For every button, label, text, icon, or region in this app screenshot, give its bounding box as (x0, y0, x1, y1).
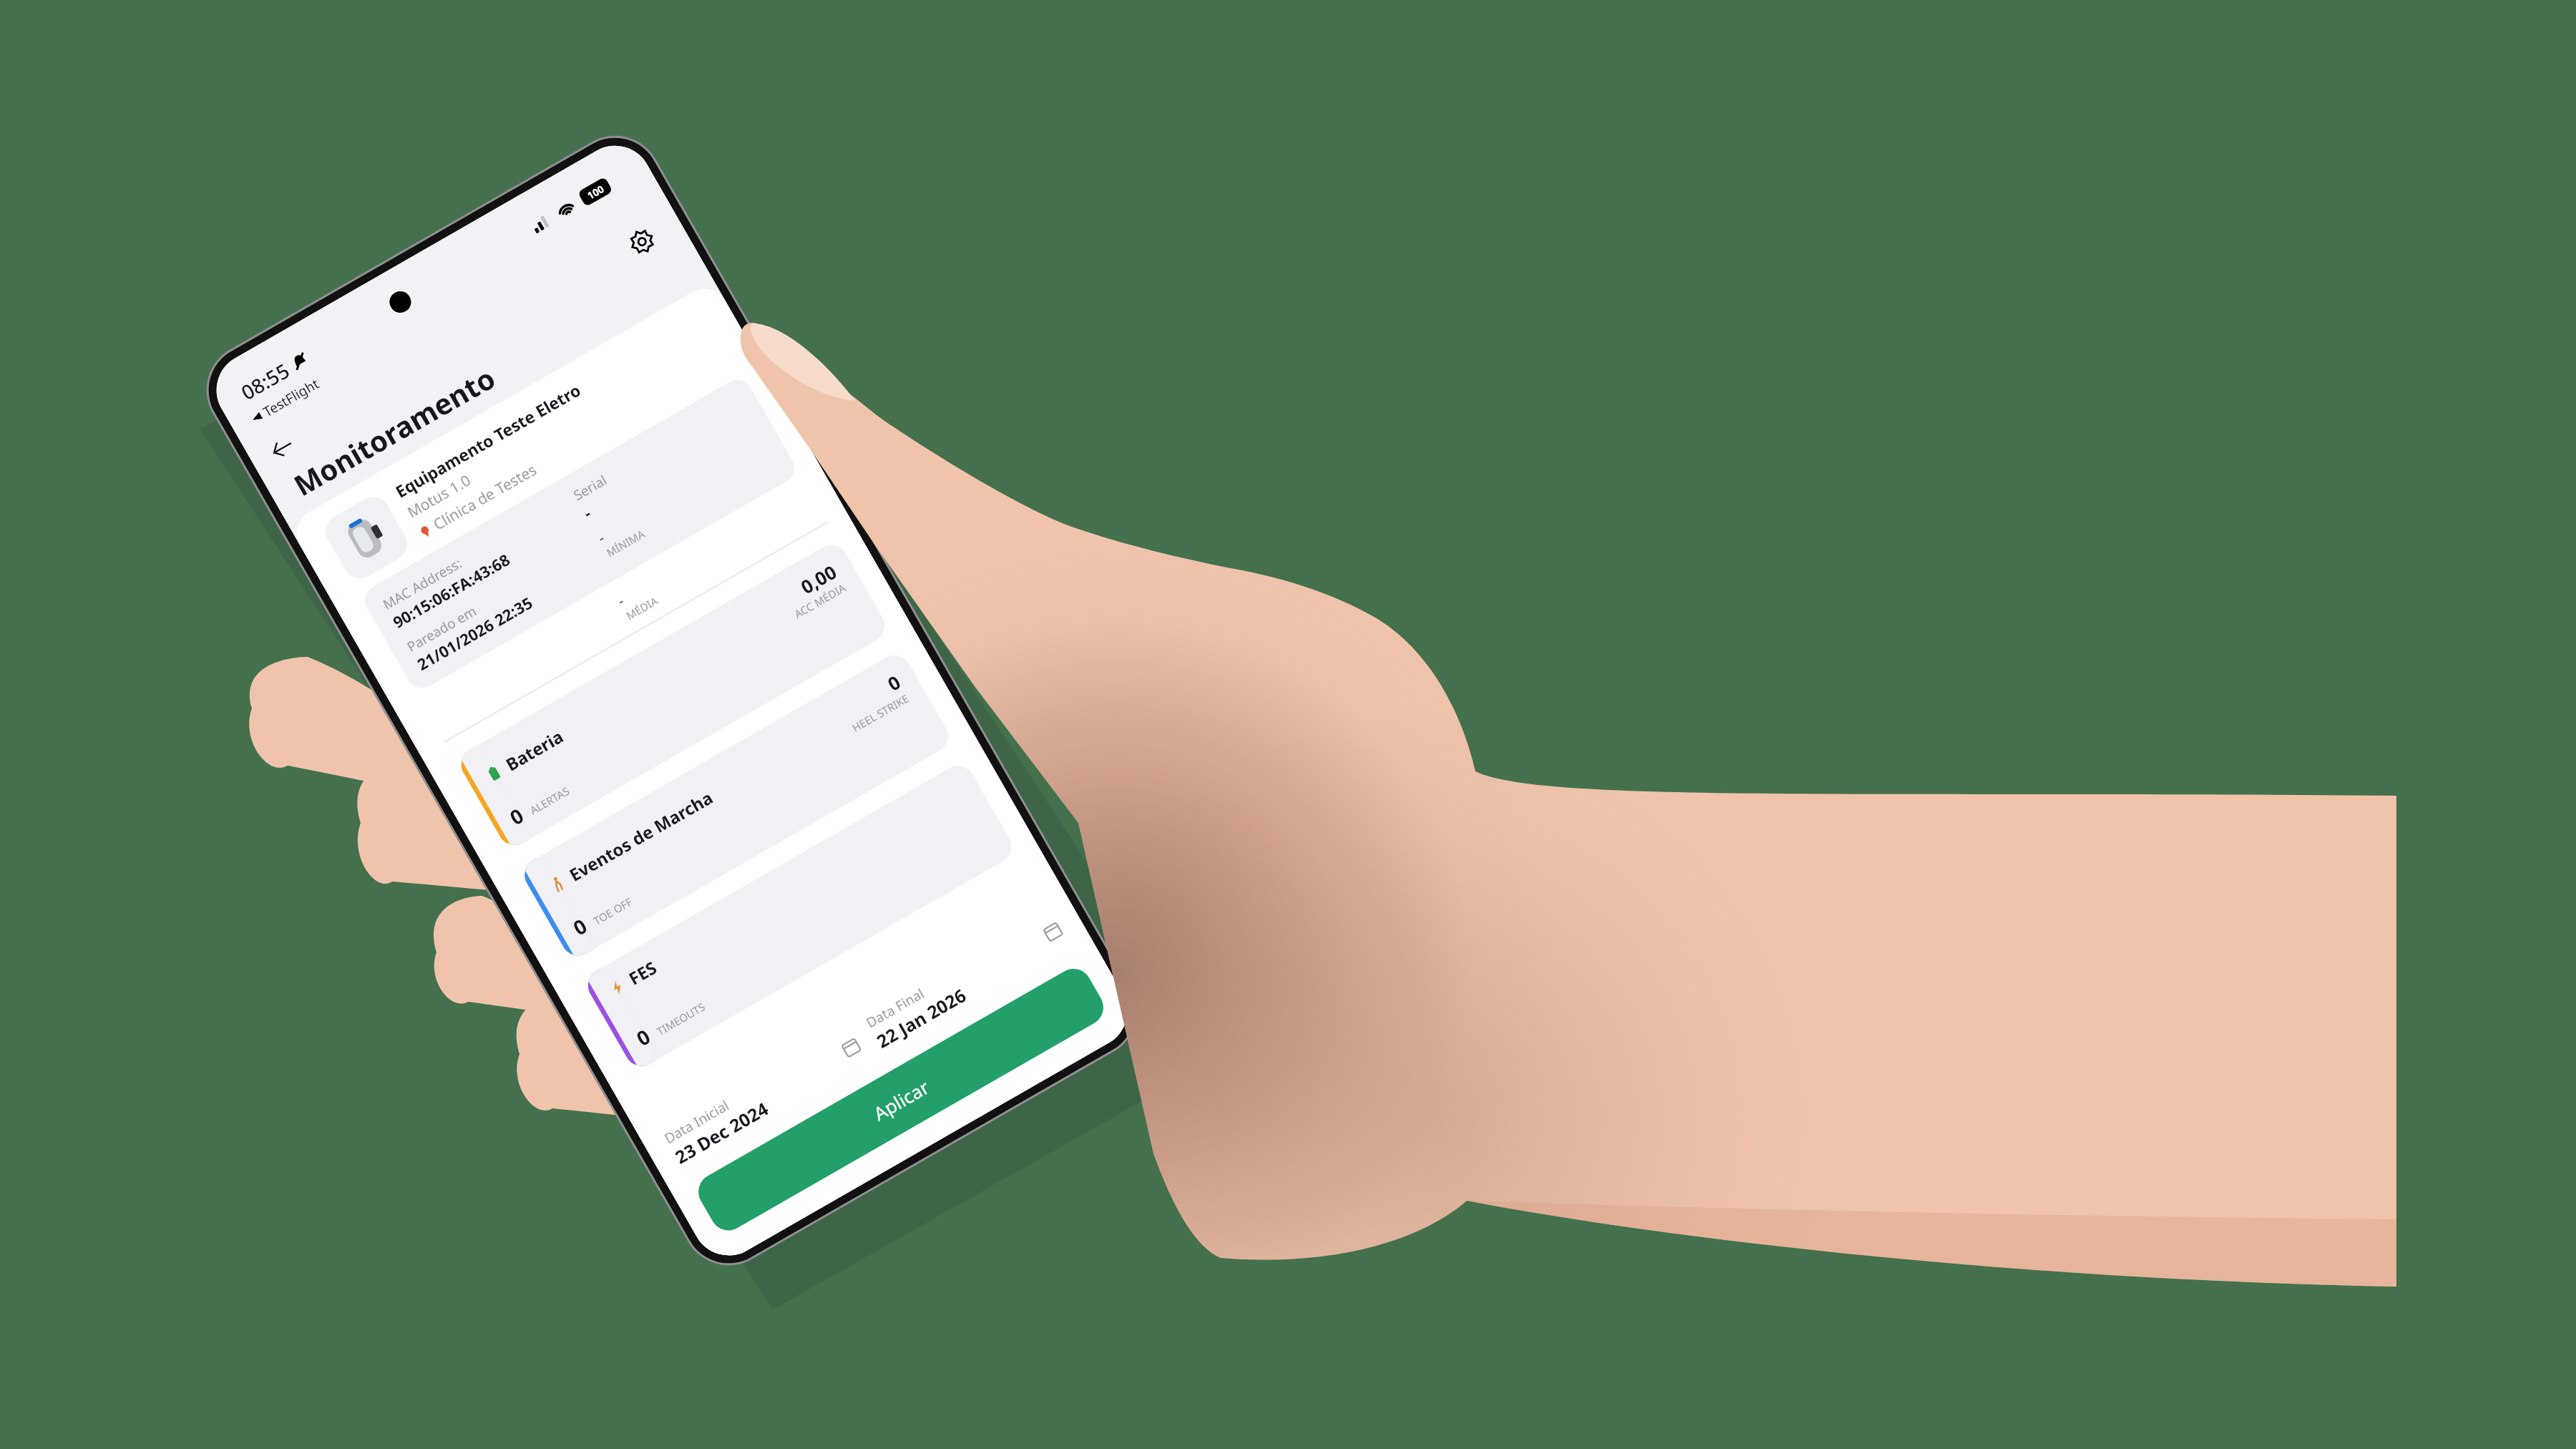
staticText: HEEL STRIKE (849, 691, 912, 735)
staticText: 0 (883, 669, 905, 696)
staticText: 90:15:06:FA:43:68 (389, 548, 514, 632)
staticText: MÍNIMA (604, 526, 648, 560)
staticText: 0 (631, 1022, 656, 1052)
button[interactable]: Equipamento Teste Eletro (319, 304, 828, 743)
button[interactable]: Data Inicial (661, 1024, 869, 1169)
staticText: 100 (585, 182, 607, 202)
staticText: 21/01/2026 22:35 (413, 591, 537, 675)
button[interactable]: Eventos de Marcha (518, 649, 954, 962)
staticText: - (579, 502, 595, 523)
staticText: Monitoramento (287, 358, 502, 504)
staticText: 22 Jan 2026 (872, 983, 970, 1053)
staticText: ACC MÉDIA (792, 580, 848, 621)
staticText: FES (624, 955, 661, 990)
staticText: TIMEOUTS (654, 999, 708, 1038)
staticText: 23 Dec 2024 (670, 1096, 772, 1169)
button[interactable]: Bateria (455, 539, 891, 851)
staticText: Data Final (863, 984, 928, 1032)
button[interactable]: Data Final (863, 909, 1071, 1053)
staticText: TOE OFF (591, 894, 635, 928)
staticText: MAC Address: (379, 554, 465, 614)
button[interactable]: Aplicar (692, 962, 1110, 1237)
staticText: Clínica de Testes (430, 459, 540, 535)
button[interactable]: FES (582, 760, 1018, 1072)
staticText: 0 (505, 801, 529, 831)
staticText: Aplicar (869, 1074, 933, 1126)
staticText: ALERTAS (527, 783, 572, 817)
staticText: Equipamento Teste Eletro (391, 378, 585, 502)
button[interactable]: Voltar (259, 425, 306, 472)
staticText: 0,00 (796, 558, 841, 599)
staticText: TestFlight (260, 374, 322, 421)
staticText: 08:55 (236, 357, 294, 406)
staticText: Motus 1.0 (404, 470, 475, 523)
staticText: Serial (570, 471, 610, 505)
staticText: 0 (568, 912, 592, 941)
staticText: - (614, 591, 628, 610)
staticText: Data Inicial (661, 1096, 732, 1148)
staticText: - (594, 528, 608, 547)
button[interactable]: Configurações (617, 216, 667, 267)
staticText: Bateria (501, 724, 568, 776)
staticText: Pareado em (404, 601, 480, 656)
staticText: Eventos de Marcha (565, 785, 717, 886)
staticText: MÉDIA (623, 593, 660, 623)
